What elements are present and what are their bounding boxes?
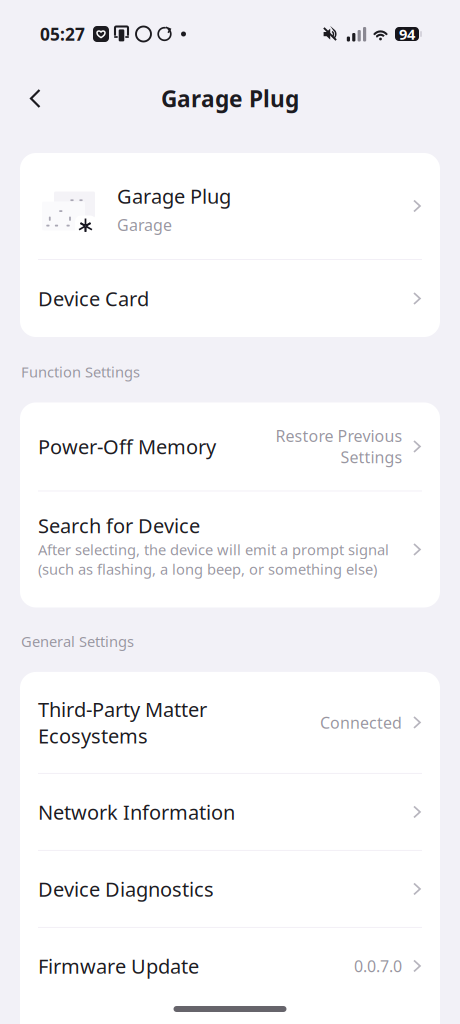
button[interactable]: Third-Party Matter Ecosystems — [20, 672, 440, 773]
staticText: Garage Plug — [161, 83, 299, 113]
button[interactable]: Network Information — [20, 774, 440, 850]
staticText: Device Card — [38, 285, 149, 312]
staticText: Garage Plug — [117, 183, 231, 209]
staticText: Third-Party Matter Ecosystems — [38, 696, 207, 749]
staticText: After selecting, the device will emit a … — [38, 540, 389, 579]
button[interactable]: Firmware Update — [20, 928, 440, 1004]
button[interactable]: Search for Device — [20, 491, 440, 607]
button[interactable]: Back — [12, 74, 58, 122]
staticText: Network Information — [38, 799, 235, 825]
staticText: Garage — [117, 214, 172, 235]
staticText: 0.0.7.0 — [354, 955, 402, 976]
button[interactable]: Power-Off Memory — [20, 402, 440, 490]
button[interactable]: Device Diagnostics — [20, 851, 440, 927]
staticText: Connected — [320, 712, 402, 733]
staticText: Power-Off Memory — [38, 433, 216, 460]
staticText: Function Settings — [21, 362, 140, 381]
button[interactable]: Device Card — [20, 260, 440, 337]
staticText: 94 — [399, 24, 415, 44]
staticText: Restore Previous Settings — [275, 425, 402, 468]
staticText: General Settings — [21, 631, 134, 651]
staticText: Firmware Update — [38, 953, 199, 979]
staticText: Device Diagnostics — [38, 876, 214, 902]
staticText: Search for Device — [38, 512, 200, 539]
staticText: 05:27 — [40, 22, 85, 45]
button[interactable]: Garage Plug — [20, 153, 440, 259]
